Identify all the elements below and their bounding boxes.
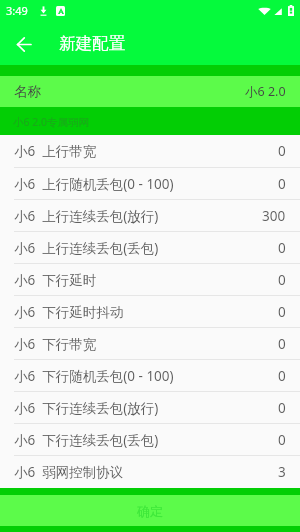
button[interactable]: 小6 上行连续丢包(丢包) — [0, 232, 300, 263]
staticText: 0 — [278, 175, 286, 193]
button[interactable]: 小6 上行连续丢包(放行) — [0, 200, 300, 231]
staticText: 0 — [278, 303, 286, 321]
button[interactable]: 小6 下行连续丢包(丢包) — [0, 424, 300, 455]
staticText: 小6 上行连续丢包(放行) — [14, 207, 159, 225]
staticText: 0 — [278, 399, 286, 417]
staticText: 确定 — [137, 503, 163, 519]
staticText: 小6 上行带宽 — [14, 142, 97, 160]
staticText: 3 — [278, 463, 286, 481]
staticText: 0 — [278, 239, 286, 257]
staticText: 0 — [278, 367, 286, 385]
button[interactable]: Back — [0, 22, 47, 65]
staticText: 0 — [278, 142, 286, 160]
staticText: 3:49 — [6, 3, 28, 18]
button[interactable]: 小6 下行带宽 — [0, 328, 300, 359]
staticText: 新建配置 — [59, 33, 125, 54]
staticText: 小6 上行随机丢包(0 - 100) — [14, 175, 174, 193]
staticText: 小6 弱网控制协议 — [14, 463, 124, 481]
staticText: 小6 2.0专属弱网 — [13, 115, 90, 129]
staticText: 名称 — [14, 83, 41, 100]
button[interactable]: 小6 弱网控制协议 — [0, 456, 300, 487]
staticText: 小6 2.0 — [245, 83, 286, 100]
button[interactable]: 小6 下行连续丢包(放行) — [0, 392, 300, 423]
staticText: 0 — [278, 271, 286, 289]
staticText: 小6 下行连续丢包(丢包) — [14, 431, 159, 449]
button[interactable]: 小6 上行随机丢包(0 - 100) — [0, 168, 300, 199]
staticText: 小6 下行带宽 — [14, 335, 97, 353]
staticText: 0 — [278, 335, 286, 353]
button[interactable]: 名称 — [0, 76, 300, 107]
staticText: 小6 下行随机丢包(0 - 100) — [14, 367, 174, 385]
staticText: 小6 下行延时抖动 — [14, 303, 124, 321]
staticText: 0 — [278, 431, 286, 449]
staticText: 300 — [262, 207, 286, 225]
staticText: 小6 下行延时 — [14, 271, 97, 289]
button[interactable]: 小6 下行延时抖动 — [0, 296, 300, 327]
button[interactable]: 确定 — [0, 495, 300, 526]
staticText: 小6 上行连续丢包(丢包) — [14, 239, 159, 257]
staticText: 小6 下行连续丢包(放行) — [14, 399, 159, 417]
button[interactable]: 小6 下行随机丢包(0 - 100) — [0, 360, 300, 391]
button[interactable]: 小6 下行延时 — [0, 264, 300, 295]
button[interactable]: 小6 上行带宽 — [0, 135, 300, 167]
